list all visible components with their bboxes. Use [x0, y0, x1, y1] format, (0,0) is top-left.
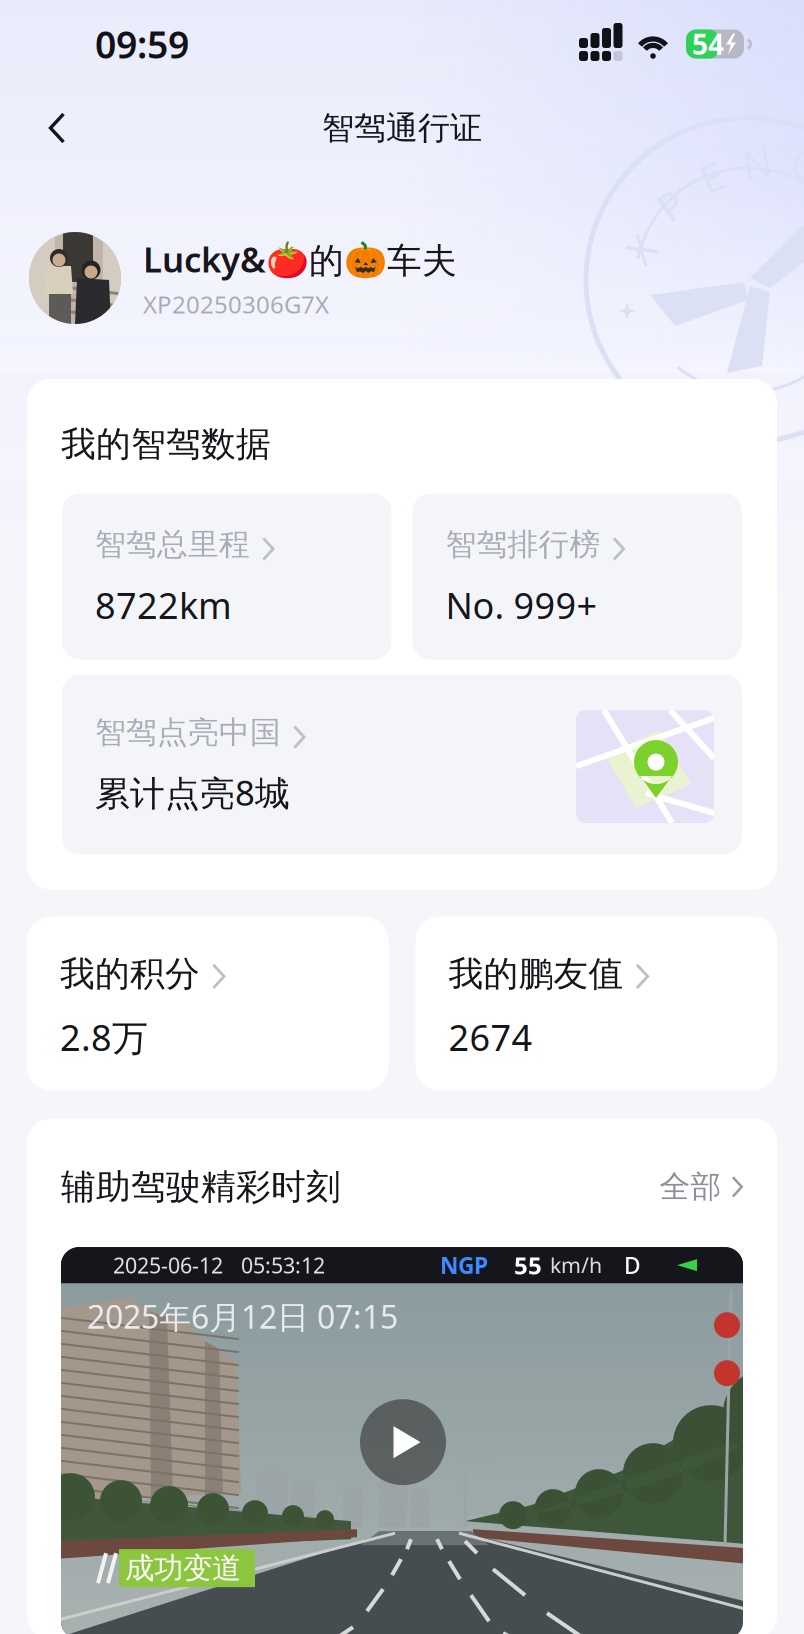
staticText: No. 999+ — [445, 581, 597, 629]
button[interactable]: 智驾点亮中国 — [62, 675, 742, 855]
button[interactable]: 我的鹏友值 — [415, 917, 777, 1091]
staticText: 我的智驾数据 — [61, 423, 271, 466]
staticText: 智驾通行证 — [322, 108, 482, 148]
staticText: 辅助驾驶精彩时刻 — [61, 1166, 341, 1208]
button[interactable]: 智驾总里程 — [62, 494, 391, 660]
staticText: N — [742, 137, 771, 189]
staticText: 智驾排行榜 — [445, 526, 600, 563]
staticText: 54 — [692, 25, 724, 63]
staticText: Lucky&🍅的🎃车夫 — [143, 236, 457, 282]
staticText: 累计点亮8城 — [95, 769, 290, 815]
button[interactable]: Back — [26, 97, 88, 159]
staticText: X — [629, 223, 652, 275]
button[interactable]: 我的积分 — [27, 917, 388, 1091]
staticText: 我的鹏友值 — [448, 953, 623, 995]
staticText: 8722km — [95, 581, 232, 629]
staticText: NGP — [440, 1250, 488, 1280]
staticText: 2674 — [448, 1013, 532, 1061]
staticText: 2025年6月12日 07:15 — [87, 1295, 398, 1338]
staticText: XP20250306G7X — [143, 288, 329, 320]
staticText: 智驾点亮中国 — [95, 714, 281, 751]
staticText: 全部 — [660, 1168, 722, 1206]
staticText: D — [624, 1250, 641, 1280]
staticText: 成功变道 — [125, 1550, 241, 1586]
staticText: 智驾总里程 — [95, 526, 250, 563]
button[interactable]: 智驾排行榜 — [412, 494, 742, 660]
staticText: G — [791, 139, 804, 191]
staticText: 2.8万 — [60, 1013, 148, 1061]
staticText: 我的积分 — [60, 953, 200, 995]
staticText: 2025-06-12 05:53:12 — [113, 1251, 325, 1279]
staticText: 55 — [514, 1249, 542, 1281]
staticText: P — [659, 179, 682, 231]
staticText: 09:59 — [95, 19, 189, 69]
button[interactable]: 全部 — [660, 1168, 743, 1206]
staticText: E — [700, 151, 721, 203]
staticText: km/h — [550, 1251, 602, 1279]
